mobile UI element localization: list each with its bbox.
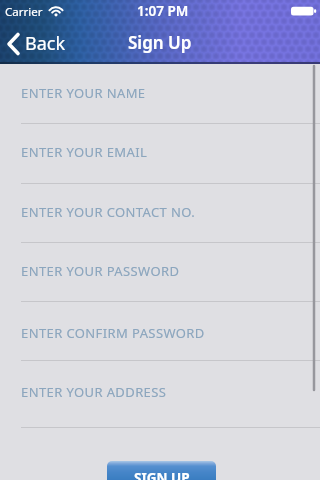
staticText: ENTER YOUR PASSWORD — [21, 262, 180, 280]
staticText: ENTER YOUR CONTACT NO. — [21, 203, 196, 221]
staticText: ENTER YOUR EMAIL — [21, 143, 148, 161]
staticText: ENTER CONFIRM PASSWORD — [21, 324, 205, 342]
staticText: Sign Up — [128, 31, 192, 54]
staticText: Carrier — [5, 4, 43, 20]
button[interactable]: ENTER YOUR NAME — [0, 64, 320, 124]
button[interactable]: SIGN UP — [107, 461, 216, 480]
button[interactable]: Back — [0, 26, 72, 60]
staticText: 1:07 PM — [137, 2, 189, 20]
button[interactable]: ENTER YOUR CONTACT NO. — [0, 184, 320, 243]
staticText: ENTER YOUR ADDRESS — [21, 383, 167, 401]
staticText: Back — [25, 31, 66, 56]
button[interactable]: ENTER YOUR EMAIL — [0, 124, 320, 184]
button[interactable]: ENTER CONFIRM PASSWORD — [0, 302, 320, 361]
button[interactable]: ENTER YOUR PASSWORD — [0, 243, 320, 302]
staticText: SIGN UP — [134, 469, 190, 480]
staticText: ENTER YOUR NAME — [21, 84, 146, 102]
button[interactable]: ENTER YOUR ADDRESS — [0, 361, 320, 428]
